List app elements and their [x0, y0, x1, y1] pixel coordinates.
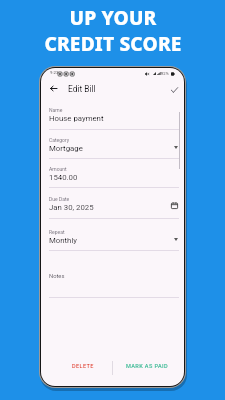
staticText: Repeat — [49, 229, 65, 235]
staticText: MARK AS PAID — [126, 363, 168, 370]
staticText: Mortgage — [49, 144, 83, 153]
staticText: Amount — [49, 166, 67, 172]
staticText: House payment — [49, 114, 104, 123]
staticText: Category — [49, 137, 70, 143]
staticText: Edit Bill — [68, 84, 96, 94]
staticText: Jan 30, 2025 — [49, 203, 94, 212]
button[interactable]: Back — [47, 82, 60, 95]
staticText: Due Date — [49, 196, 70, 202]
button[interactable]: DELETE — [63, 359, 102, 374]
staticText: Name — [49, 107, 63, 113]
button[interactable]: Save — [168, 83, 181, 96]
staticText: 1540.00 — [49, 173, 78, 182]
staticText: 9:23 — [50, 70, 59, 75]
staticText: Monthly — [49, 236, 77, 245]
staticText: UP YOUR — [69, 4, 157, 30]
button[interactable]: MARK AS PAID — [121, 359, 173, 374]
staticText: 92% — [161, 71, 169, 76]
staticText: CREDIT SCORE — [44, 30, 182, 56]
staticText: DELETE — [72, 363, 94, 370]
staticText: Notes — [49, 273, 65, 280]
